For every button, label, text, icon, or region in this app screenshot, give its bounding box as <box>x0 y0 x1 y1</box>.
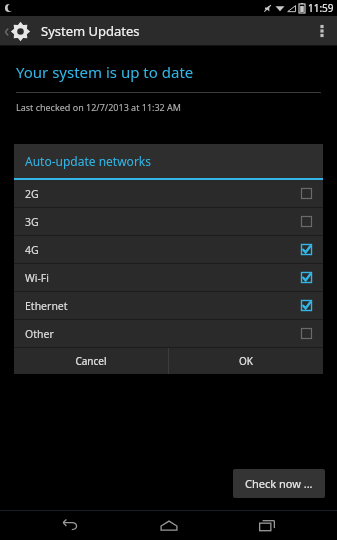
staticText: Other <box>25 327 54 341</box>
button[interactable]: Wi-Fi <box>14 264 323 291</box>
button[interactable]: 3G <box>14 208 323 235</box>
button[interactable]: Recent apps <box>239 510 295 540</box>
button[interactable]: OK <box>169 348 323 374</box>
staticText: Last checked on 12/7/2013 at 11:32 AM <box>16 101 182 113</box>
button[interactable]: More options <box>307 16 337 46</box>
staticText: Auto-update networks <box>25 153 151 169</box>
staticText: System Updates <box>41 22 140 40</box>
button[interactable]: Back <box>42 510 98 540</box>
staticText: Ethernet <box>25 299 68 313</box>
staticText: 3G <box>25 215 39 229</box>
button[interactable]: Cancel <box>14 348 168 374</box>
staticText: 4G <box>25 243 39 257</box>
staticText: 2G <box>25 187 39 201</box>
button[interactable]: Navigate up <box>2 21 33 42</box>
button[interactable]: Ethernet <box>14 292 323 319</box>
staticText: Wi-Fi <box>25 271 50 285</box>
staticText: Your system is up to date <box>16 62 194 82</box>
staticText: Check now ... <box>245 476 313 491</box>
staticText: OK <box>239 354 253 368</box>
button[interactable]: Other <box>14 320 323 347</box>
button[interactable]: 2G <box>14 180 323 207</box>
staticText: Cancel <box>75 354 107 368</box>
button[interactable]: Home <box>141 510 197 540</box>
button[interactable]: 4G <box>14 236 323 263</box>
button[interactable]: Check now ... <box>233 469 325 498</box>
staticText: 11:59 <box>308 1 334 15</box>
